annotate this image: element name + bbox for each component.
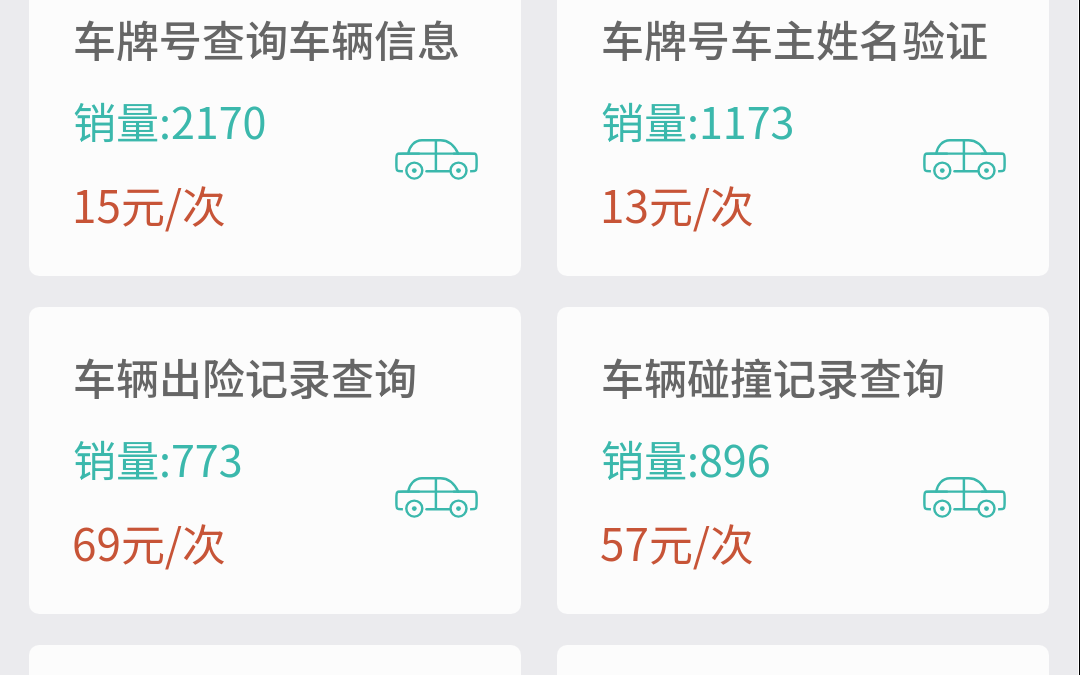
staticText: 13元/次	[600, 172, 755, 236]
staticText: 销量:2170	[73, 89, 267, 151]
staticText: 销量:896	[601, 427, 771, 489]
other: 车辆服务	[395, 139, 478, 182]
other: 车辆服务	[923, 477, 1006, 520]
staticText: 车辆出险记录查询	[73, 345, 417, 407]
other: 车辆服务	[923, 139, 1006, 182]
staticText: 69元/次	[72, 510, 227, 574]
button[interactable]: 车辆出险记录查询	[29, 307, 521, 614]
staticText: 15元/次	[72, 172, 227, 236]
other: 车辆服务	[395, 477, 478, 520]
button[interactable]: 车辆碰撞记录查询	[557, 307, 1049, 614]
button[interactable]: 车牌号查询车辆信息	[29, 0, 521, 276]
staticText: 车牌号查询车辆信息	[73, 7, 460, 69]
staticText: 车辆碰撞记录查询	[601, 345, 945, 407]
button[interactable]: 车牌号车主姓名验证	[557, 0, 1049, 276]
staticText: 车牌号车主姓名验证	[601, 7, 988, 69]
staticText: 销量:773	[73, 427, 243, 489]
staticText: 57元/次	[600, 510, 755, 574]
staticText: 销量:1173	[601, 89, 795, 151]
